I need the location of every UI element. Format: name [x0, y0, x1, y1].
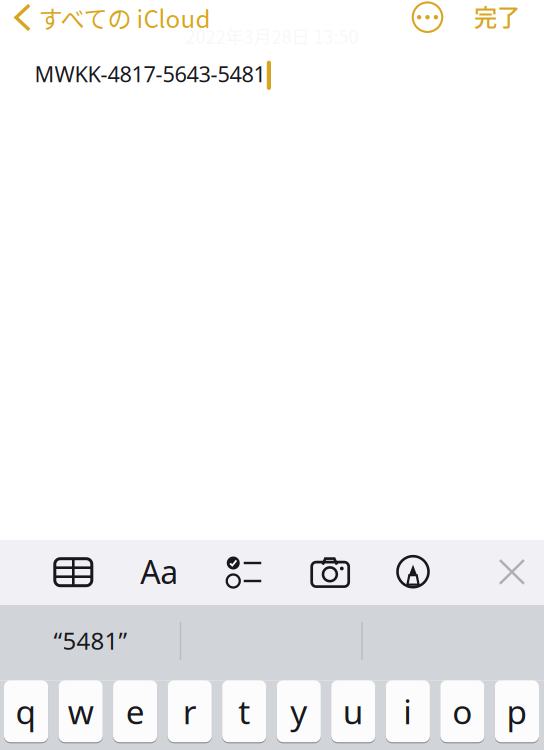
button[interactable]: Back to all iCloud notes — [14, 0, 244, 35]
staticText: Aa — [140, 550, 178, 593]
button[interactable]: r — [168, 680, 212, 742]
button[interactable]: q — [4, 680, 48, 742]
button[interactable]: More — [399, 0, 455, 39]
button[interactable]: Suggestion — [180, 605, 361, 681]
button[interactable]: w — [58, 680, 103, 742]
staticText: y — [290, 689, 307, 733]
staticText: i — [403, 689, 412, 733]
button[interactable]: i — [386, 680, 430, 742]
button[interactable]: Checklist — [215, 543, 273, 601]
button[interactable]: 完了 — [462, 0, 532, 38]
staticText: u — [343, 689, 364, 733]
button[interactable]: y — [277, 680, 321, 742]
button[interactable]: Text formatting — [130, 542, 188, 600]
staticText: 2022年3月28日 13:50 — [185, 23, 358, 49]
staticText: すべての iCloud — [38, 0, 210, 35]
button[interactable]: Camera — [301, 544, 359, 602]
staticText: r — [183, 689, 197, 733]
staticText: q — [16, 689, 37, 733]
staticText: e — [126, 689, 145, 733]
button[interactable]: Hide keyboard — [483, 543, 541, 601]
staticText: o — [452, 689, 472, 733]
button[interactable]: Markup — [384, 543, 442, 601]
button[interactable]: Table — [44, 543, 102, 601]
staticText: 完了 — [474, 0, 520, 33]
button[interactable]: “5481” — [0, 603, 180, 678]
button[interactable]: o — [440, 680, 484, 742]
staticText: t — [238, 689, 250, 733]
button[interactable]: t — [222, 680, 266, 742]
button[interactable]: p — [495, 680, 539, 742]
staticText: MWKK-4817-5643-5481 — [35, 59, 266, 89]
staticText: p — [506, 689, 527, 733]
staticText: “5481” — [53, 625, 127, 656]
button[interactable]: e — [113, 680, 157, 742]
button[interactable]: u — [331, 680, 375, 742]
staticText: w — [68, 689, 94, 733]
